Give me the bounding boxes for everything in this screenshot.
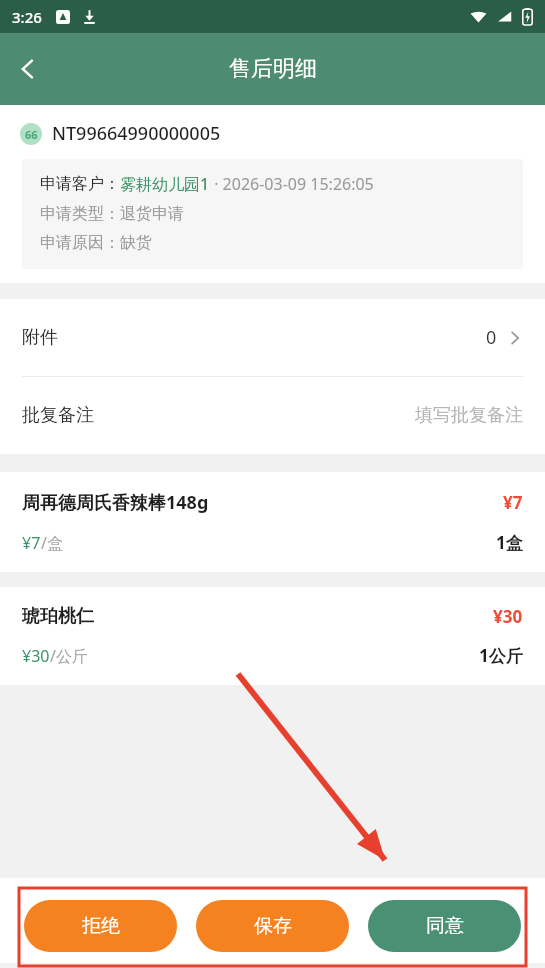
staticText: 申请类型：退货申请	[40, 204, 184, 224]
staticText: 同意	[426, 914, 464, 938]
staticText: 申请原因：缺货	[40, 233, 152, 253]
staticText: 批复备注	[22, 404, 94, 427]
staticText: 拒绝	[82, 914, 120, 938]
staticText: /盒	[41, 532, 63, 554]
staticText: 申请客户：	[40, 174, 120, 194]
staticText: /公斤	[50, 645, 88, 667]
staticText: ¥7	[22, 532, 41, 554]
staticText: 雾耕幼儿园1	[120, 173, 210, 195]
staticText: ¥30	[493, 605, 523, 628]
button[interactable]: Back	[0, 41, 56, 97]
staticText: 3:26	[12, 7, 42, 27]
button[interactable]: 批复备注	[0, 377, 545, 454]
staticText: 1盒	[496, 531, 523, 554]
staticText: ¥7	[503, 491, 523, 514]
staticText: 保存	[254, 914, 292, 938]
staticText: 66	[25, 127, 38, 142]
button[interactable]: 拒绝	[24, 900, 177, 952]
staticText: 琥珀桃仁	[22, 605, 485, 628]
staticText: 0	[486, 325, 497, 350]
staticText: · 2026-03-09 15:26:05	[210, 173, 374, 195]
staticText: NT99664990000005	[52, 121, 221, 146]
button[interactable]: 附件	[0, 299, 545, 376]
staticText: ¥30	[22, 645, 50, 667]
button[interactable]: 同意	[368, 900, 521, 952]
staticText: 附件	[22, 326, 58, 349]
staticText: 填写批复备注	[415, 404, 523, 427]
staticText: 1公斤	[479, 644, 523, 667]
button[interactable]: 保存	[196, 900, 349, 952]
staticText: 售后明细	[229, 55, 317, 83]
staticText: 周再德周氏香辣棒148g	[22, 490, 495, 515]
